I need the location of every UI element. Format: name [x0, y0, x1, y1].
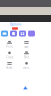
button[interactable]: Options: [10, 23, 21, 26]
staticText: Edit: [24, 55, 29, 59]
button[interactable]: More: [28, 30, 35, 36]
staticText: Print: [6, 45, 13, 48]
button[interactable]: Edit: [18, 50, 35, 59]
button[interactable]: Print: [1, 40, 18, 49]
button[interactable]: Copy: [1, 50, 18, 59]
button[interactable]: More: [18, 61, 35, 70]
staticText: Copy: [6, 55, 13, 59]
button[interactable]: Save: [18, 40, 35, 49]
button[interactable]: Share: [1, 61, 18, 70]
staticText: Options: [10, 23, 21, 26]
staticText: Share: [6, 66, 13, 69]
button[interactable]: AirDrop: [1, 30, 8, 36]
button[interactable]: Messages: [10, 30, 17, 36]
button[interactable]: Mail: [19, 30, 26, 36]
staticText: Save: [24, 45, 29, 48]
button[interactable]: Send: [23, 86, 28, 90]
staticText: More: [23, 66, 30, 69]
